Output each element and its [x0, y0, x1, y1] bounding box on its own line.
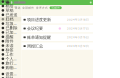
button[interactable]: 未读 [0, 43, 21, 48]
staticText: 2024年3月15日 [67, 36, 89, 39]
staticText: 草稿 [5, 8, 13, 13]
staticText: 设置中心 [5, 71, 19, 77]
staticText: 已加星标 [5, 30, 19, 35]
staticText: 会议纪要 [27, 26, 43, 31]
button[interactable]: 工作 [0, 52, 21, 57]
staticText: 已发送 [5, 12, 17, 17]
staticText: 垃圾邮件 [5, 21, 19, 26]
staticText: 已删除 [5, 25, 17, 30]
button[interactable]: 写邮件 [49, 6, 62, 9]
staticText: 2024年3月17日 [67, 27, 89, 30]
button[interactable]: 附件 [0, 39, 21, 43]
staticText: 标签 [5, 47, 13, 52]
staticText: 3 [18, 0, 20, 3]
button[interactable]: 收件箱 [0, 0, 21, 4]
staticText: 帮助反馈 [5, 76, 19, 78]
button[interactable]: 已发送 [0, 13, 21, 17]
staticText: 全部邮件 [22, 6, 34, 9]
staticText: 提醒 [5, 34, 13, 39]
button[interactable]: 垃圾邮件 [0, 21, 21, 26]
button[interactable]: 草稿 [0, 8, 21, 13]
staticText: 工作 [5, 52, 13, 57]
button[interactable]: 会议纪要 [21, 25, 93, 32]
staticText: 个人生活 [5, 56, 19, 61]
button[interactable]: 周报汇总 [21, 42, 93, 50]
button[interactable]: 设置中心 [0, 72, 21, 76]
button[interactable]: 项目进度更新 [21, 16, 93, 23]
staticText: 筛选 [15, 6, 21, 9]
staticText: 稍后处理 [5, 3, 19, 9]
button[interactable]: 稍后处理 [0, 4, 21, 8]
staticText: 收件箱 [5, 0, 15, 4]
button[interactable]: 帮助反馈 [0, 76, 21, 78]
staticText: 排序方式 [36, 6, 48, 9]
staticText: 未读 [5, 43, 13, 48]
staticText: 账单通知提醒 [27, 35, 51, 40]
staticText: 2024年3月18日 [67, 18, 89, 21]
staticText: 项目进度更新 [27, 17, 51, 22]
staticText: 写邮件 [51, 6, 60, 9]
staticText: 旅行计划 [5, 61, 19, 66]
staticText: 周报汇总 [27, 44, 43, 49]
staticText: 归档 [5, 17, 13, 22]
button[interactable]: 购物清单 [0, 65, 21, 70]
button[interactable]: 已删除 [0, 26, 21, 30]
staticText: 附件 [5, 39, 13, 44]
button[interactable]: 旅行计划 [0, 61, 21, 65]
button[interactable]: 标签 [0, 48, 21, 52]
button[interactable]: 账单通知提醒 [21, 34, 93, 41]
button[interactable]: 已加星标 [0, 30, 21, 35]
button[interactable]: 提醒 [0, 35, 21, 39]
staticText: 2024年3月12日 [67, 44, 89, 48]
button[interactable]: 归档 [0, 17, 21, 21]
button[interactable]: 个人生活 [0, 57, 21, 61]
staticText: 购物清单 [5, 65, 19, 70]
